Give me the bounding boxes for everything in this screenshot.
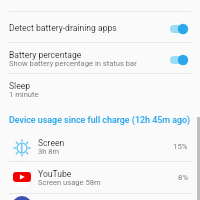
staticText: Screen bbox=[38, 138, 65, 148]
staticText: Detect battery-draining apps bbox=[9, 23, 117, 33]
staticText: 1 minute bbox=[9, 90, 39, 99]
button[interactable]: Toggle setting bbox=[169, 53, 189, 67]
other: Screen brightness bbox=[13, 139, 31, 157]
staticText: 15% bbox=[173, 142, 188, 151]
staticText: Sleep bbox=[9, 81, 31, 91]
staticText: YouTube bbox=[38, 169, 72, 179]
button[interactable]: YouTube bbox=[0, 161, 200, 192]
button[interactable]: Detect battery-draining apps bbox=[0, 12, 200, 42]
other: YouTube bbox=[12, 167, 32, 187]
button[interactable]: Sleep bbox=[0, 74, 200, 104]
staticText: Battery percentage bbox=[9, 50, 82, 60]
staticText: Show battery percentage in status bar bbox=[9, 59, 137, 68]
staticText: 8% bbox=[178, 173, 189, 182]
staticText: 3h 8m bbox=[38, 147, 60, 156]
staticText: Screen usage 58m bbox=[38, 178, 101, 187]
staticText: Device usage since full charge (12h 45m … bbox=[9, 115, 191, 125]
button[interactable]: Toggle setting bbox=[169, 22, 189, 36]
button[interactable]: Battery percentage bbox=[0, 43, 200, 73]
button[interactable]: Screen brightness bbox=[0, 130, 200, 161]
